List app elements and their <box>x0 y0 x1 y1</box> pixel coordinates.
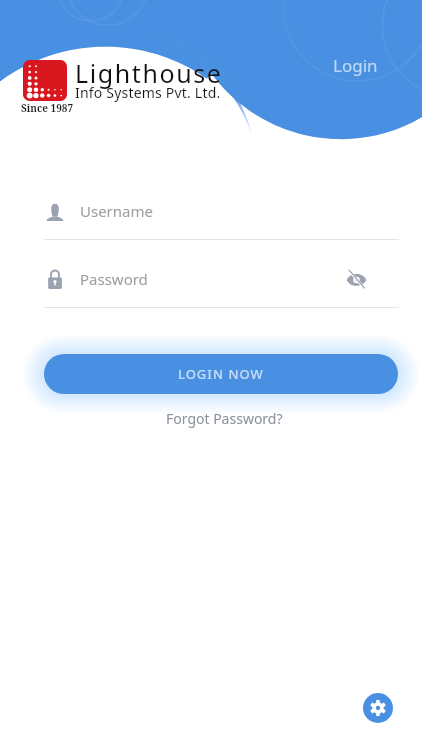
button[interactable]: Login <box>333 54 378 77</box>
staticText: Login <box>333 54 378 77</box>
staticText: Lighthouse <box>75 56 223 90</box>
button[interactable]: Settings <box>363 693 393 723</box>
button[interactable]: Toggle password visibility <box>340 263 372 295</box>
staticText: Info Systems Pvt. Ltd. <box>75 83 221 102</box>
staticText: Since 1987 <box>21 101 74 115</box>
staticText: Username <box>80 201 153 221</box>
staticText: LOGIN NOW <box>178 365 264 383</box>
staticText: Password <box>80 269 148 289</box>
button[interactable]: LOGIN NOW <box>44 354 398 394</box>
button[interactable]: Forgot Password? <box>166 409 283 428</box>
